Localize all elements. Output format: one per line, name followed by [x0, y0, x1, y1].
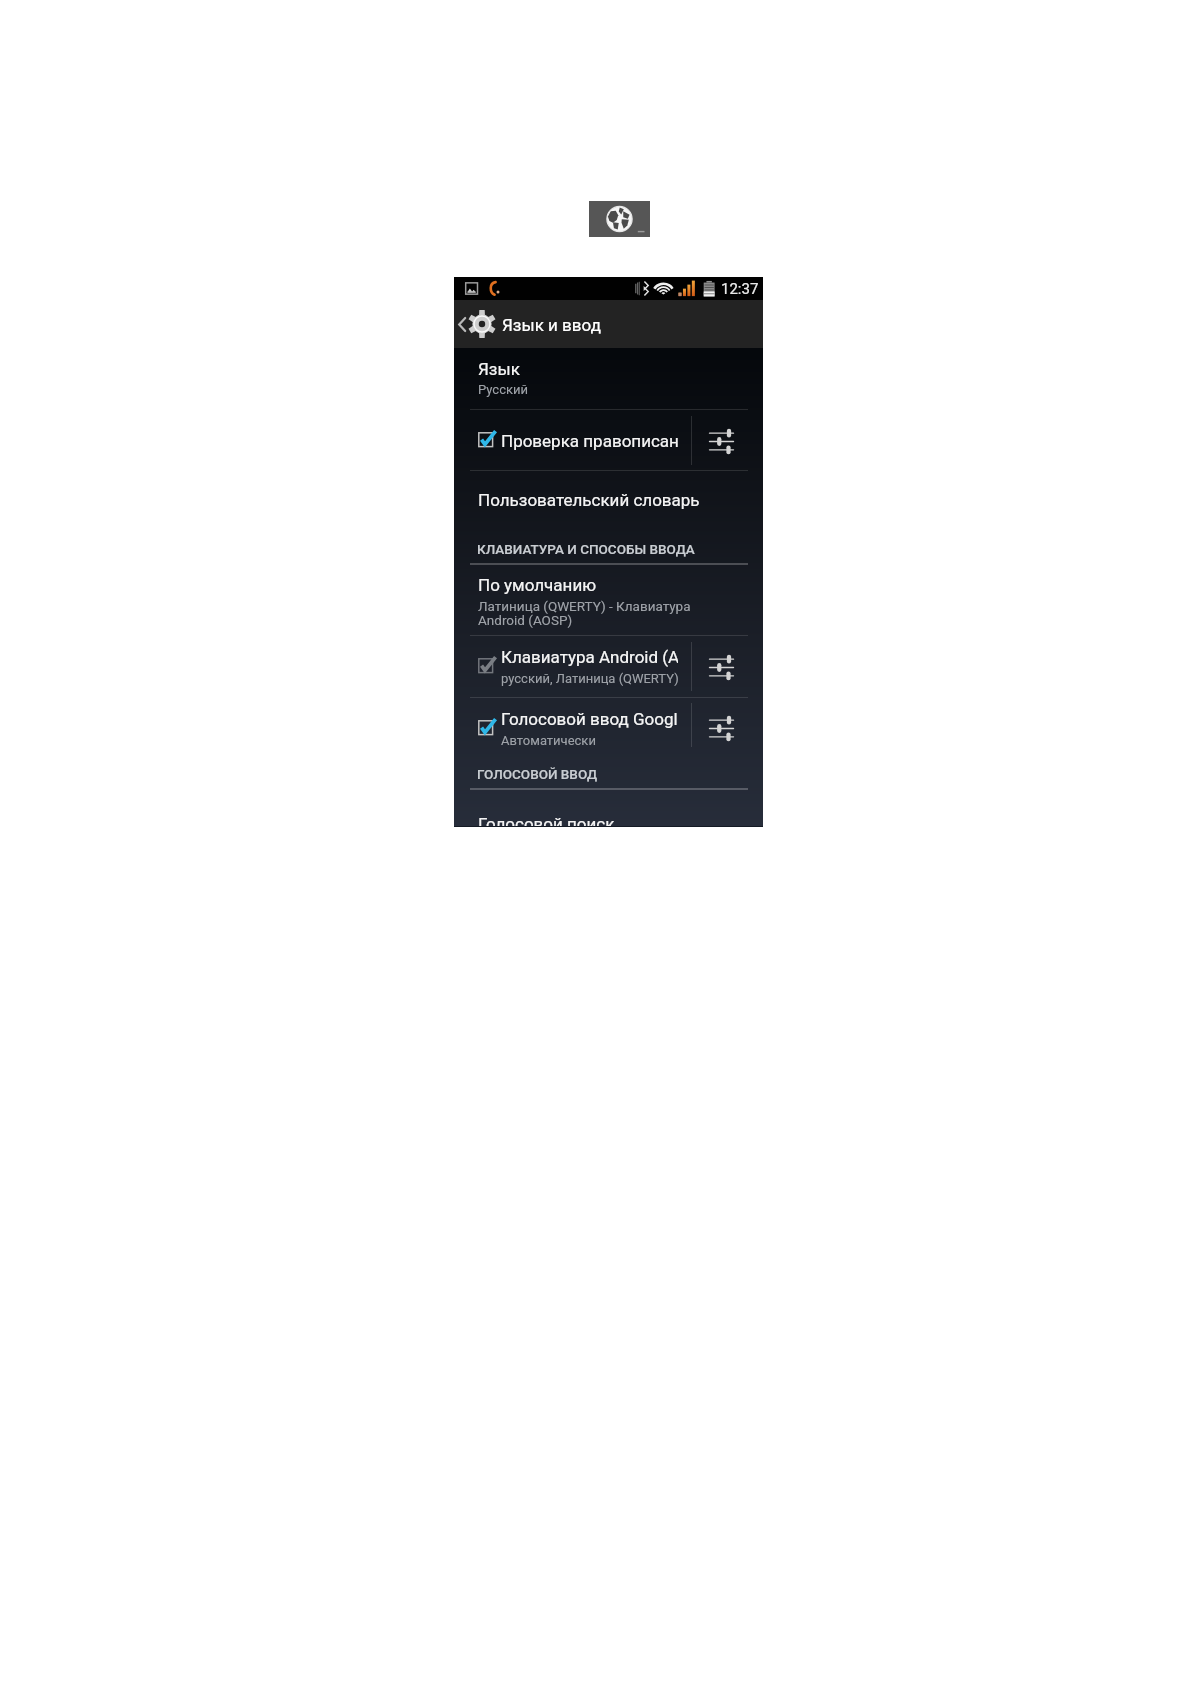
- button[interactable]: Unchecked: [478, 658, 500, 679]
- staticText: 12:37: [721, 280, 759, 298]
- staticText: русский, Латиница (QWERTY): [501, 671, 678, 686]
- button[interactable]: Back to Settings: [454, 300, 763, 348]
- staticText: По умолчанию: [478, 575, 597, 595]
- button[interactable]: Пользовательский словарь: [454, 471, 763, 533]
- button[interactable]: Checked: [478, 720, 500, 741]
- staticText: Голосовой поиск: [478, 814, 615, 827]
- button[interactable]: Проверка правописания: [454, 410, 763, 470]
- staticText: Русский: [478, 382, 529, 397]
- button[interactable]: Клавиатура Android: [454, 636, 763, 697]
- staticText: Пользовательский словарь: [478, 490, 700, 510]
- staticText: Проверка правописания: [501, 431, 678, 451]
- staticText: Автоматически: [501, 733, 596, 748]
- staticText: Язык и ввод: [502, 315, 601, 335]
- staticText: Латиница (QWERTY) - Клавиатура Android (…: [478, 598, 691, 629]
- staticText: Клавиатура Android (Android): [501, 647, 678, 667]
- button[interactable]: Globe image: [589, 201, 650, 237]
- button[interactable]: Голосовой ввод Google: [454, 698, 763, 755]
- button[interactable]: Settings: [697, 647, 745, 687]
- button[interactable]: Checked: [478, 432, 500, 453]
- button[interactable]: Settings: [697, 421, 745, 461]
- button[interactable]: Голосовой поиск: [454, 790, 763, 827]
- staticText: Язык: [478, 359, 520, 379]
- staticText: КЛАВИАТУРА И СПОСОБЫ ВВОДА: [477, 541, 695, 557]
- staticText: ГОЛОСОВОЙ ВВОД: [477, 766, 598, 782]
- button[interactable]: По умолчанию: [454, 565, 763, 635]
- button[interactable]: Язык: [454, 348, 763, 409]
- button[interactable]: Settings: [697, 708, 745, 748]
- staticText: Голосовой ввод Google: [501, 709, 678, 729]
